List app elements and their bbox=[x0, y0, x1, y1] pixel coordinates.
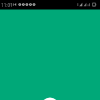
staticText: 11:01 bbox=[1, 2, 13, 8]
button[interactable]: Continue bbox=[40, 90, 60, 100]
